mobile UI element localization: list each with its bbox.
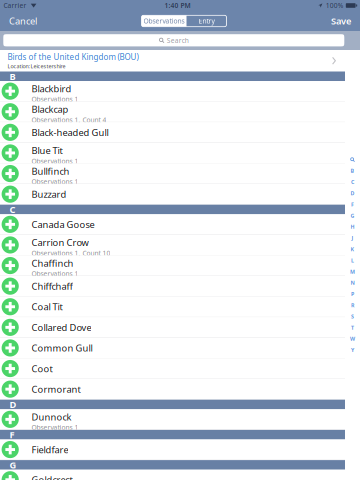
staticText: T: [351, 324, 354, 331]
staticText: Chaffinch: [31, 257, 73, 269]
staticText: Observations 1, Count 10: [31, 249, 110, 257]
staticText: Carrion Crow: [31, 236, 88, 249]
button[interactable]: Blackcap: [0, 102, 345, 122]
button[interactable]: L: [345, 255, 360, 266]
staticText: F: [351, 201, 354, 208]
staticText: Collared Dove: [31, 321, 91, 334]
button[interactable]: Observations: [141, 15, 186, 27]
button[interactable]: W: [345, 333, 360, 344]
staticText: D: [9, 398, 16, 411]
staticText: Bullfinch: [31, 165, 69, 177]
button[interactable]: Y: [345, 344, 360, 356]
button[interactable]: K: [345, 244, 360, 255]
staticText: G: [9, 459, 16, 471]
button[interactable]: Cancel: [0, 11, 46, 31]
staticText: N: [350, 279, 354, 286]
staticText: R: [351, 302, 354, 309]
button[interactable]: G: [345, 210, 360, 221]
button[interactable]: R: [345, 300, 360, 311]
staticText: Birds of the United Kingdom (BOU): [7, 52, 138, 62]
button[interactable]: B: [345, 165, 360, 176]
button[interactable]: Search index: [345, 154, 360, 165]
staticText: F: [9, 428, 14, 441]
button[interactable]: F: [345, 199, 360, 210]
button[interactable]: Collared Dove: [0, 317, 345, 338]
staticText: G: [350, 212, 354, 219]
staticText: B: [9, 70, 15, 82]
staticText: H: [350, 223, 354, 230]
staticText: Chiffchaff: [31, 280, 72, 292]
button[interactable]: J: [345, 232, 360, 244]
button[interactable]: Fieldfare: [0, 439, 345, 460]
button[interactable]: Entry: [186, 15, 226, 27]
button[interactable]: D: [345, 188, 360, 199]
staticText: Search: [167, 36, 189, 45]
staticText: Cormorant: [31, 383, 80, 395]
staticText: B: [350, 167, 354, 174]
button[interactable]: Buzzard: [0, 184, 345, 205]
staticText: Coot: [31, 362, 52, 375]
button[interactable]: Birds of the United Kingdom (BOU): [0, 50, 345, 71]
button[interactable]: Chiffchaff: [0, 276, 345, 297]
button[interactable]: Common Gull: [0, 338, 345, 358]
button[interactable]: Search: [0, 31, 360, 50]
staticText: Cancel: [9, 15, 37, 27]
button[interactable]: Save: [322, 11, 360, 31]
staticText: Y: [351, 346, 354, 354]
staticText: Blackbird: [31, 82, 71, 95]
button[interactable]: T: [345, 322, 360, 333]
staticText: Observations: [143, 17, 184, 25]
staticText: Blue Tit: [31, 144, 62, 157]
staticText: Coal Tit: [31, 301, 62, 313]
staticText: Observations 1: [31, 95, 78, 104]
staticText: Observations 1: [31, 423, 78, 432]
staticText: W: [350, 335, 355, 342]
staticText: Black-headed Gull: [31, 126, 108, 139]
button[interactable]: Coal Tit: [0, 297, 345, 317]
staticText: Save: [331, 15, 351, 27]
staticText: M: [350, 268, 355, 275]
staticText: Canada Goose: [31, 218, 94, 231]
button[interactable]: N: [345, 277, 360, 288]
button[interactable]: Chaffinch: [0, 255, 345, 276]
staticText: Observations 1: [31, 177, 78, 186]
staticText: Blackcap: [31, 103, 68, 115]
button[interactable]: S: [345, 311, 360, 322]
staticText: J: [351, 234, 353, 242]
staticText: C: [351, 178, 354, 186]
staticText: S: [351, 313, 354, 320]
button[interactable]: Black-headed Gull: [0, 122, 345, 143]
staticText: Observations 1, Count 4: [31, 115, 106, 124]
button[interactable]: Bullfinch: [0, 163, 345, 184]
staticText: 100%: [326, 1, 344, 10]
button[interactable]: Dunnock: [0, 409, 345, 430]
button[interactable]: P: [345, 288, 360, 300]
button[interactable]: Goldcrest: [0, 470, 345, 480]
staticText: Fieldfare: [31, 443, 68, 456]
staticText: C: [9, 203, 15, 216]
button[interactable]: Blue Tit: [0, 143, 345, 163]
staticText: K: [350, 246, 354, 253]
button[interactable]: Carrion Crow: [0, 235, 345, 255]
staticText: Entry: [198, 17, 214, 25]
staticText: L: [351, 257, 354, 264]
staticText: Dunnock: [31, 411, 71, 423]
staticText: 1:40 PM: [164, 1, 190, 10]
staticText: Carrier: [4, 1, 27, 10]
staticText: P: [351, 290, 354, 298]
staticText: Common Gull: [31, 342, 92, 354]
button[interactable]: H: [345, 221, 360, 232]
button[interactable]: Cormorant: [0, 379, 345, 400]
button[interactable]: Coot: [0, 358, 345, 379]
staticText: D: [350, 190, 354, 197]
button[interactable]: C: [345, 176, 360, 188]
staticText: Observations 1: [31, 269, 78, 278]
button[interactable]: Canada Goose: [0, 214, 345, 235]
staticText: Observations 1: [31, 157, 78, 165]
button[interactable]: Blackbird: [0, 81, 345, 102]
staticText: Goldcrest: [31, 474, 72, 480]
staticText: Buzzard: [31, 188, 66, 200]
button[interactable]: M: [345, 266, 360, 277]
staticText: Location: Leicestershire: [7, 63, 65, 70]
